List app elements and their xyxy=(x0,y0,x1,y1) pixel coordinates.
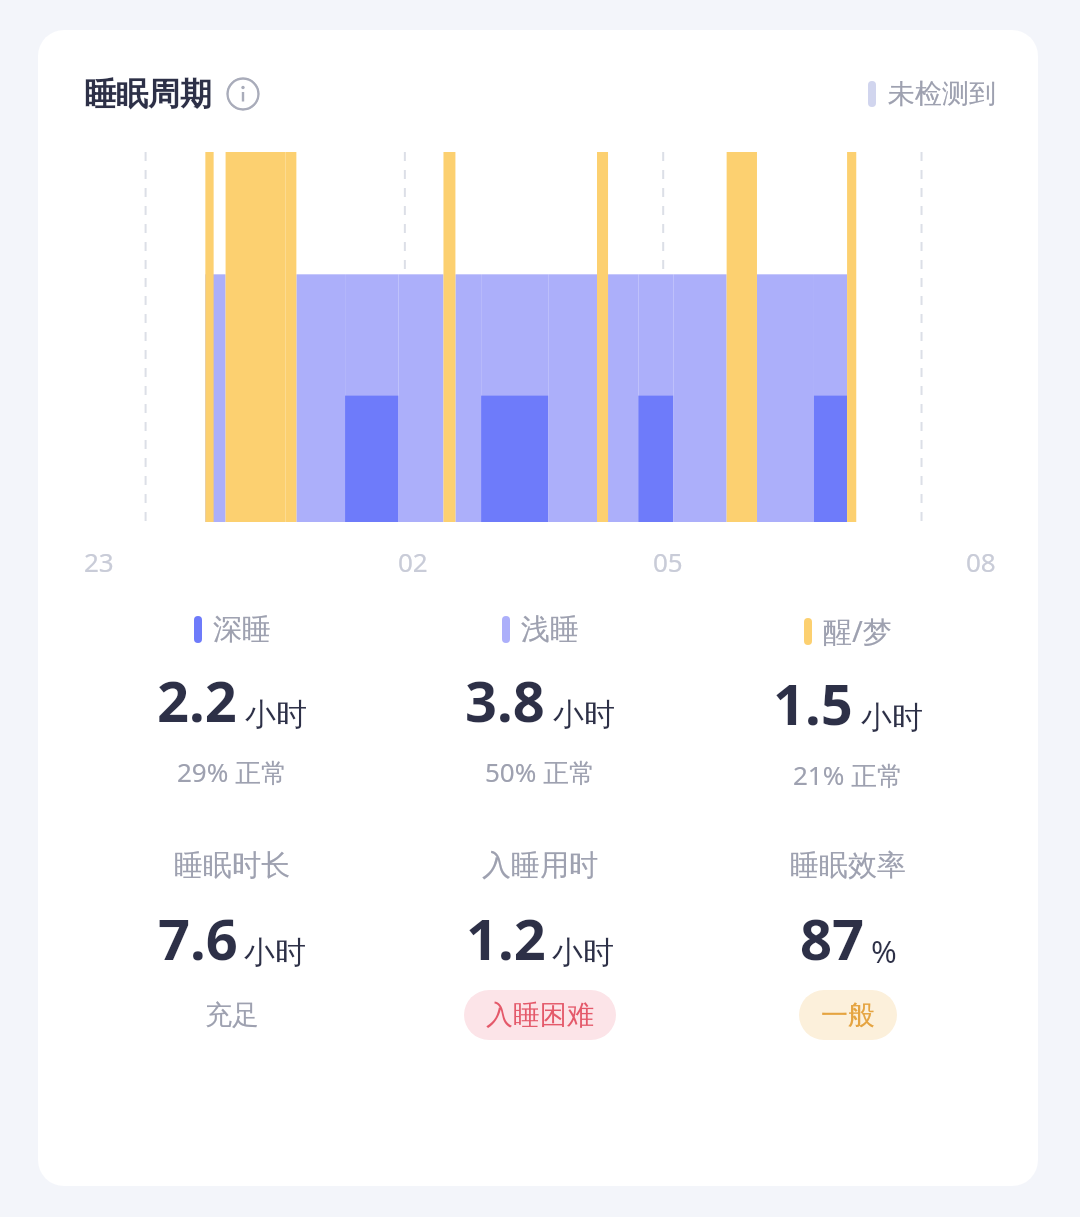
staticText: 充足 xyxy=(205,998,259,1032)
staticText: 7.6 xyxy=(158,900,238,976)
staticText: 深睡 xyxy=(213,611,271,648)
staticText: 一般 xyxy=(821,998,875,1032)
staticText: 29% 正常 xyxy=(177,754,288,790)
button[interactable]: 醒/梦 xyxy=(694,611,1002,793)
button[interactable]: 睡眠时长 xyxy=(78,847,386,1040)
staticText: 小时 xyxy=(552,933,614,972)
staticText: 未检测到 xyxy=(888,77,996,111)
staticText: 浅睡 xyxy=(521,611,579,648)
staticText: 50% 正常 xyxy=(485,754,596,790)
button[interactable]: 入睡用时 xyxy=(386,847,694,1040)
staticText: 1.5 xyxy=(773,665,853,741)
staticText: 入睡用时 xyxy=(482,847,598,884)
staticText: 睡眠效率 xyxy=(790,847,906,884)
staticText: 87 xyxy=(800,900,865,976)
staticText: 08 xyxy=(966,544,996,579)
staticText: 睡眠时长 xyxy=(174,847,290,884)
staticText: 23 xyxy=(84,544,114,579)
button[interactable]: 睡眠效率 xyxy=(694,847,1002,1040)
staticText: 1.2 xyxy=(466,900,546,976)
staticText: % xyxy=(871,930,897,972)
staticText: 小时 xyxy=(245,695,307,734)
staticText: 入睡困难 xyxy=(486,998,594,1032)
button[interactable]: 深睡 xyxy=(78,611,386,790)
staticText: 小时 xyxy=(244,933,306,972)
staticText: 02 xyxy=(398,544,428,579)
staticText: 2.2 xyxy=(157,662,237,738)
staticText: 3.8 xyxy=(465,662,545,738)
staticText: 05 xyxy=(653,544,683,579)
button[interactable]: 浅睡 xyxy=(386,611,694,790)
staticText: 小时 xyxy=(553,695,615,734)
staticText: 醒/梦 xyxy=(823,611,892,651)
button[interactable]: 关于睡眠周期 xyxy=(226,77,260,111)
staticText: 小时 xyxy=(861,698,923,737)
staticText: 21% 正常 xyxy=(793,757,904,793)
staticText: 睡眠周期 xyxy=(84,74,212,114)
